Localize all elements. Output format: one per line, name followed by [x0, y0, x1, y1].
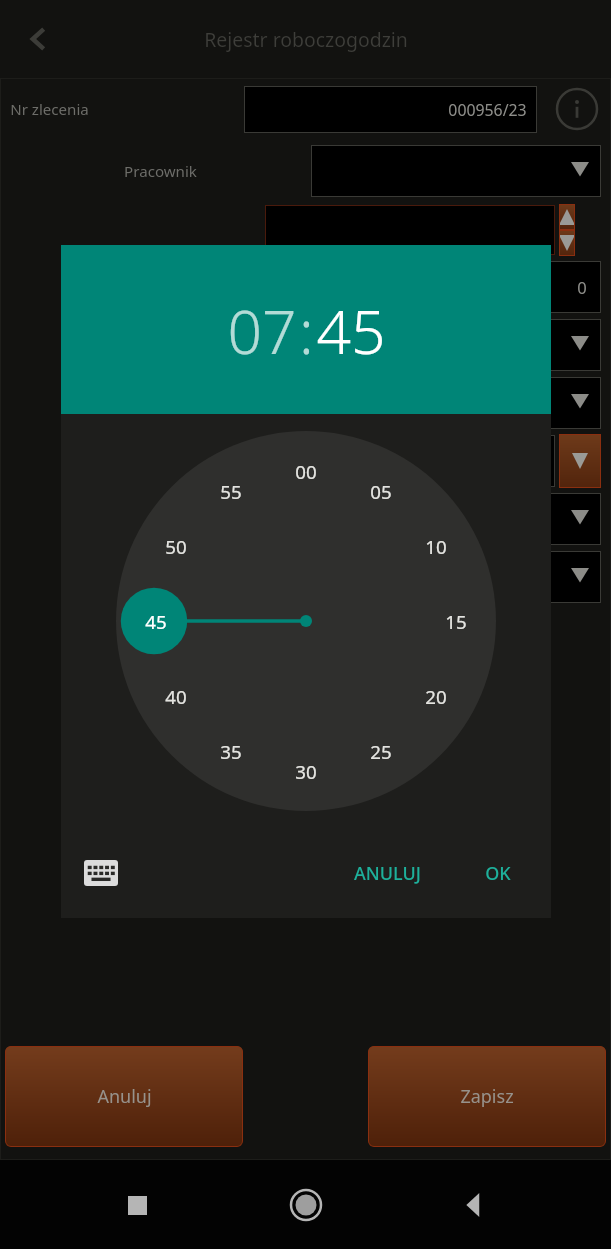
staticText: 40 — [165, 684, 187, 709]
staticText: OK — [485, 861, 511, 886]
button[interactable]: Increase — [559, 204, 575, 230]
staticText: 10 — [425, 534, 447, 559]
staticText: 00 — [295, 459, 317, 484]
button[interactable]: Info — [553, 85, 601, 133]
button[interactable]: 0 — [265, 261, 601, 313]
staticText: 15 — [445, 609, 467, 634]
button[interactable]: Recents — [105, 1173, 169, 1237]
button[interactable] — [265, 493, 601, 545]
staticText: ANULUJ — [354, 861, 421, 886]
button[interactable]: Decrease — [559, 434, 601, 488]
staticText: 0 — [577, 276, 587, 299]
staticText: 20 — [425, 684, 447, 709]
button[interactable]: Anuluj — [5, 1046, 243, 1147]
button[interactable]: Home — [274, 1173, 338, 1237]
staticText: Nr zlecenia — [10, 99, 89, 120]
button[interactable]: 07 — [227, 289, 297, 371]
button[interactable]: Keyboard input — [79, 851, 123, 895]
button[interactable]: Zapisz — [368, 1046, 606, 1147]
staticText: 35 — [220, 739, 242, 764]
button[interactable]: Back — [442, 1173, 506, 1237]
button[interactable]: OK — [475, 853, 521, 894]
staticText: 55 — [220, 479, 242, 504]
staticText: Zapisz — [460, 1084, 514, 1109]
staticText: Pracownik — [124, 161, 197, 182]
staticText: 07 — [227, 289, 297, 371]
staticText: 05 — [370, 479, 392, 504]
button[interactable] — [265, 319, 601, 371]
staticText: 45 — [316, 289, 386, 371]
button[interactable]: Back — [12, 12, 66, 66]
staticText: 30 — [295, 759, 317, 784]
button[interactable] — [311, 145, 601, 197]
staticText: Anuluj — [97, 1084, 152, 1109]
button[interactable]: ANULUJ — [344, 853, 431, 894]
button[interactable]: Decrease — [559, 230, 575, 256]
button[interactable]: 45 — [316, 289, 386, 371]
button[interactable] — [265, 435, 555, 487]
button[interactable] — [265, 551, 601, 603]
staticText: 50 — [165, 534, 187, 559]
staticText: : — [299, 289, 314, 371]
staticText: 45 — [145, 609, 167, 634]
staticText: Rejestr roboczogodzin — [204, 26, 408, 52]
button[interactable] — [265, 205, 555, 255]
staticText: 25 — [370, 739, 392, 764]
staticText: 000956/23 — [448, 99, 527, 121]
button[interactable] — [265, 377, 601, 429]
button[interactable]: 000956/23 — [244, 86, 537, 133]
